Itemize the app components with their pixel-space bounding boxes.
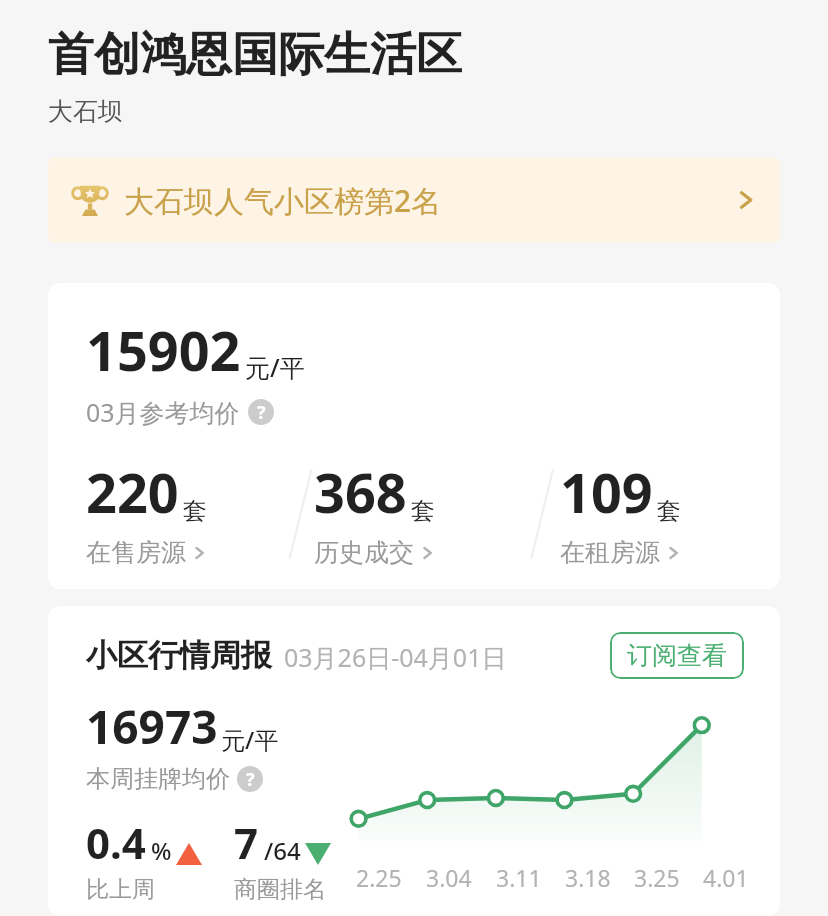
staticText: 在售房源 [86,537,186,568]
staticText: 商圈排名 [234,875,326,903]
staticText: % [151,834,172,867]
staticText: 订阅查看 [627,640,727,671]
staticText: 4.01 [703,862,749,893]
button[interactable]: 368 [314,455,536,577]
staticText: 03月26日-04月01日 [284,640,507,674]
staticText: 本周挂牌均价 [86,764,230,794]
other: Trophy [72,183,108,217]
staticText: 比上周 [86,875,155,903]
staticText: 元/平 [221,723,279,756]
staticText: 大石坝 [48,96,123,127]
staticText: 109 [560,455,653,529]
staticText: 3.25 [634,862,680,893]
staticText: 0.4 [86,814,146,871]
staticText: ? [246,767,255,792]
staticText: /64 [264,834,301,867]
staticText: 套 [657,496,681,526]
staticText: 小区行情周报 [86,636,272,675]
button[interactable]: 220 [86,455,292,577]
staticText: 16973 [86,695,218,758]
staticText: 元/平 [245,350,305,384]
staticText: 3.18 [565,862,611,893]
staticText: 2.25 [356,862,402,893]
button[interactable]: 109 [560,455,780,577]
staticText: 套 [411,496,435,526]
staticText: 368 [314,455,407,529]
staticText: ? [257,400,266,425]
button[interactable]: 订阅查看 [610,632,744,679]
staticText: 大石坝人气小区榜第2名 [124,180,442,221]
staticText: 7 [234,814,259,871]
staticText: 在租房源 [560,537,660,568]
staticText: 3.04 [426,862,472,893]
button[interactable]: Trophy [48,157,780,243]
staticText: 3.11 [496,862,542,893]
staticText: 套 [183,496,207,526]
staticText: 220 [86,455,179,529]
staticText: 15902 [86,313,241,387]
staticText: 03月参考均价 [86,395,240,429]
staticText: 首创鸿恩国际生活区 [48,26,462,84]
staticText: 历史成交 [314,537,414,568]
